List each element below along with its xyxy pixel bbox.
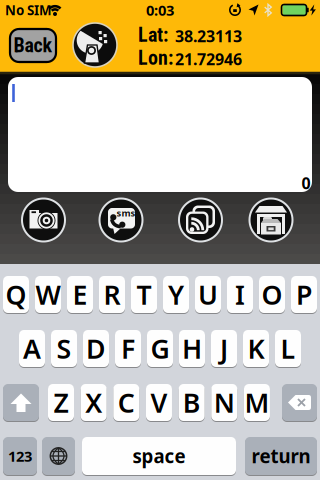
staticText: T (136, 277, 151, 312)
staticText: V (150, 385, 167, 420)
button[interactable]: E (67, 275, 93, 313)
button[interactable]: Y (163, 275, 189, 313)
button[interactable]: T (131, 275, 157, 313)
button[interactable]: 123 (3, 436, 37, 475)
staticText: J (220, 331, 228, 366)
button[interactable]: I (227, 275, 253, 313)
staticText: D (86, 331, 106, 366)
button[interactable]: N (211, 383, 237, 421)
staticText: I (235, 277, 245, 312)
button[interactable]: Shift (3, 383, 39, 421)
staticText: Lon: (138, 46, 173, 70)
button[interactable]: Send SMS (99, 198, 142, 241)
staticText: E (72, 277, 87, 312)
button[interactable]: Feeds (179, 198, 222, 241)
staticText: Y (168, 277, 184, 312)
staticText: B (183, 385, 201, 420)
button[interactable]: Camera (22, 198, 65, 241)
button[interactable]: D (83, 329, 109, 367)
button[interactable]: G (147, 329, 173, 367)
staticText: No SIM (5, 1, 52, 19)
button[interactable]: return (245, 436, 317, 475)
button[interactable]: C (113, 383, 139, 421)
staticText: A (23, 331, 41, 366)
button[interactable]: P (291, 275, 317, 313)
button[interactable]: J (211, 329, 237, 367)
button[interactable]: H (179, 329, 205, 367)
staticText: G (150, 331, 169, 366)
button[interactable]: O (259, 275, 285, 313)
staticText: H (182, 331, 202, 366)
staticText: R (103, 277, 120, 312)
staticText: 21.72946 (175, 48, 242, 70)
staticText: Back (13, 34, 52, 57)
button[interactable]: Z (48, 383, 74, 421)
staticText: O (261, 277, 282, 312)
staticText: 0:03 (146, 0, 174, 20)
button[interactable]: space (82, 436, 236, 475)
button[interactable]: X (81, 383, 107, 421)
button[interactable]: Back (10, 29, 56, 62)
staticText: S (56, 331, 71, 366)
staticText: sms (116, 207, 135, 219)
staticText: Z (53, 385, 68, 420)
staticText: Q (5, 277, 26, 312)
staticText: F (121, 331, 135, 366)
staticText: 0 (301, 172, 310, 194)
staticText: Lat: (138, 23, 168, 47)
button[interactable]: A (19, 329, 45, 367)
button[interactable]: Archive (249, 198, 292, 241)
staticText: 123 (8, 446, 32, 466)
button[interactable]: M (244, 383, 270, 421)
staticText: U (198, 277, 218, 312)
staticText: K (247, 331, 264, 366)
staticText: X (85, 385, 102, 420)
button[interactable]: W (35, 275, 61, 313)
staticText: return (251, 444, 310, 468)
button[interactable]: L (275, 329, 301, 367)
button[interactable]: U (195, 275, 221, 313)
button[interactable]: Delete (282, 383, 317, 421)
staticText: W (35, 277, 60, 312)
staticText: M (244, 385, 269, 420)
button[interactable]: S (51, 329, 77, 367)
button[interactable]: F (115, 329, 141, 367)
button[interactable]: R (99, 275, 125, 313)
button[interactable]: Q (3, 275, 29, 313)
button[interactable]: Next keyboard (42, 436, 75, 475)
staticText: 38.23113 (175, 25, 242, 47)
staticText: L (280, 331, 295, 366)
button[interactable]: V (146, 383, 172, 421)
staticText: N (214, 385, 235, 420)
button[interactable]: K (243, 329, 269, 367)
staticText: P (296, 277, 312, 312)
staticText: C (118, 385, 135, 420)
staticText: space (132, 444, 185, 468)
button[interactable]: B (179, 383, 205, 421)
